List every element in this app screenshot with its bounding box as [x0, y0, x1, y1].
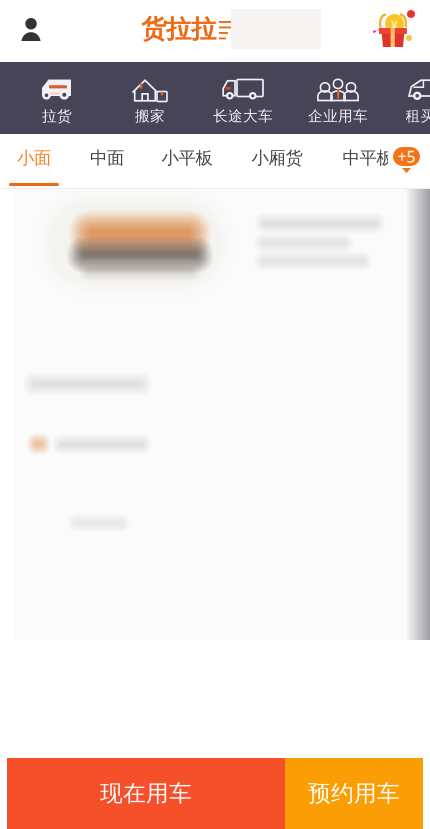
staticText: 长途大车 [213, 107, 273, 125]
staticText: 小厢货 [251, 147, 302, 169]
staticText: 中平板 [342, 147, 393, 169]
button[interactable]: 中面 [75, 138, 139, 188]
button[interactable]: 租买车 [382, 62, 430, 134]
button[interactable]: 预约用车 [285, 758, 423, 829]
staticText: 货拉拉 [141, 13, 216, 44]
button[interactable]: 拉货 [11, 62, 103, 134]
button[interactable]: Rewards [373, 2, 417, 50]
staticText: ¥ [391, 17, 398, 33]
staticText: 中面 [90, 147, 124, 169]
button[interactable]: 企业用车 [292, 62, 384, 134]
staticText: 现在用车 [100, 780, 192, 807]
button[interactable]: Account [21, 18, 41, 41]
staticText: 小面 [17, 147, 51, 169]
button[interactable]: 小面 [4, 138, 64, 188]
button[interactable]: 小厢货 [239, 138, 315, 188]
staticText: 预约用车 [308, 780, 400, 807]
button[interactable]: 搬家 [104, 62, 196, 134]
button[interactable]: 中平板 [330, 138, 406, 188]
staticText: 搬家 [135, 107, 165, 125]
staticText: 企业用车 [308, 107, 368, 125]
staticText: 租买车 [405, 107, 430, 125]
button[interactable]: More vehicle types [392, 147, 424, 177]
staticText: +5 [397, 146, 415, 167]
button[interactable]: 现在用车 [7, 758, 285, 829]
button[interactable]: 小平板 [149, 138, 225, 188]
button[interactable]: 长途大车 [197, 62, 289, 134]
staticText: 小平板 [161, 147, 212, 169]
staticText: 拉货 [42, 107, 72, 125]
